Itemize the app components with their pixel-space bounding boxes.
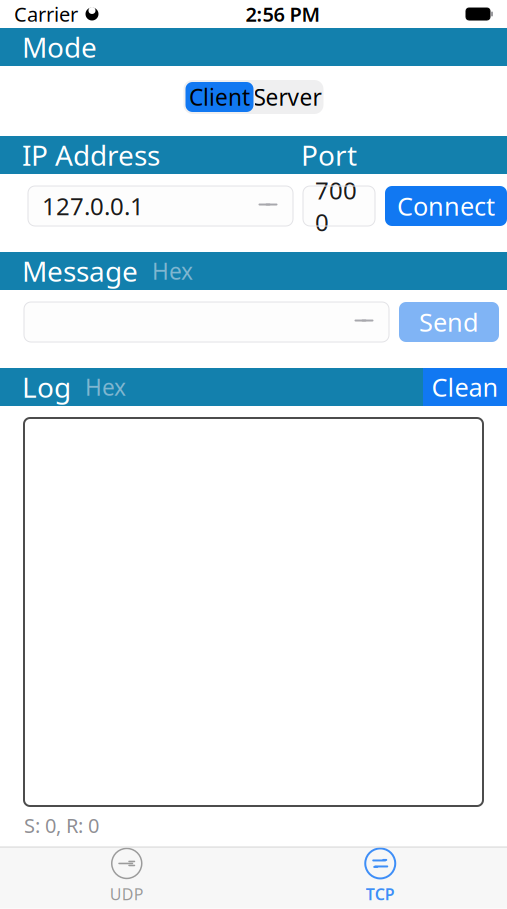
staticText: Log: [22, 368, 71, 406]
staticText: S: 0, R: 0: [24, 812, 99, 839]
button[interactable]: 127.0.0.1: [28, 186, 293, 226]
staticText: Mode: [22, 28, 97, 66]
staticText: Hex: [152, 256, 193, 286]
staticText: Message: [22, 252, 138, 290]
button[interactable]: 7000: [303, 186, 375, 226]
staticText: Client: [189, 82, 250, 112]
staticText: Send: [419, 305, 479, 339]
button[interactable]: Clean: [423, 368, 507, 406]
staticText: Server: [253, 82, 321, 112]
staticText: TCP: [366, 883, 395, 905]
staticText: Hex: [85, 372, 126, 402]
button[interactable]: Connect: [385, 186, 507, 226]
button[interactable]: UDP: [0, 840, 253, 909]
button[interactable]: Server: [253, 82, 321, 112]
staticText: Connect: [397, 189, 495, 223]
staticText: Carrier: [14, 1, 78, 27]
staticText: 7000: [315, 174, 357, 238]
staticText: 127.0.0.1: [42, 190, 144, 222]
staticText: UDP: [110, 883, 144, 905]
button[interactable]: Send: [399, 302, 499, 342]
staticText: 2:56 PM: [245, 1, 320, 27]
staticText: Clean: [431, 370, 498, 404]
staticText: IP Address: [22, 136, 160, 174]
button[interactable]: [24, 302, 389, 342]
staticText: Port: [301, 136, 357, 174]
button[interactable]: TCP: [253, 840, 507, 909]
button[interactable]: Client: [185, 82, 253, 112]
